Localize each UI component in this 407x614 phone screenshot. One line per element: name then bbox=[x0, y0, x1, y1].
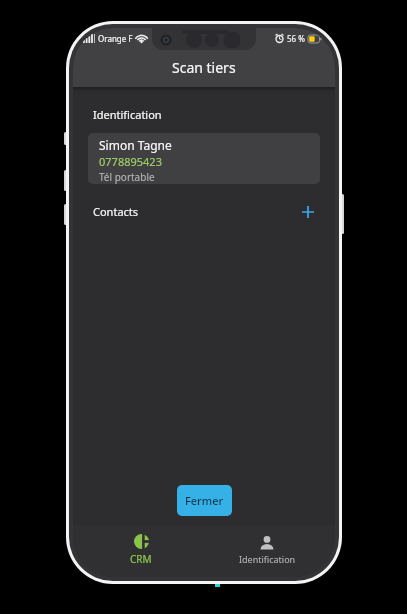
button[interactable]: CRM bbox=[78, 525, 204, 577]
staticText: Simon Tagne bbox=[99, 137, 172, 153]
staticText: 56 % bbox=[287, 33, 305, 44]
button[interactable] bbox=[302, 206, 314, 218]
staticText: Contacts bbox=[93, 204, 139, 219]
staticText: Identification bbox=[239, 553, 296, 565]
staticText: CRM bbox=[130, 552, 152, 566]
button[interactable]: Fermer bbox=[177, 485, 232, 516]
staticText: Identification bbox=[93, 107, 162, 122]
staticText: Tél portable bbox=[99, 170, 155, 184]
staticText: Orange F bbox=[98, 33, 133, 44]
staticText: Fermer bbox=[185, 493, 224, 508]
staticText: 0778895423 bbox=[99, 154, 162, 169]
button[interactable]: Simon Tagne bbox=[88, 133, 320, 184]
staticText: Scan tiers bbox=[172, 58, 236, 77]
button[interactable]: Identification bbox=[204, 525, 330, 577]
